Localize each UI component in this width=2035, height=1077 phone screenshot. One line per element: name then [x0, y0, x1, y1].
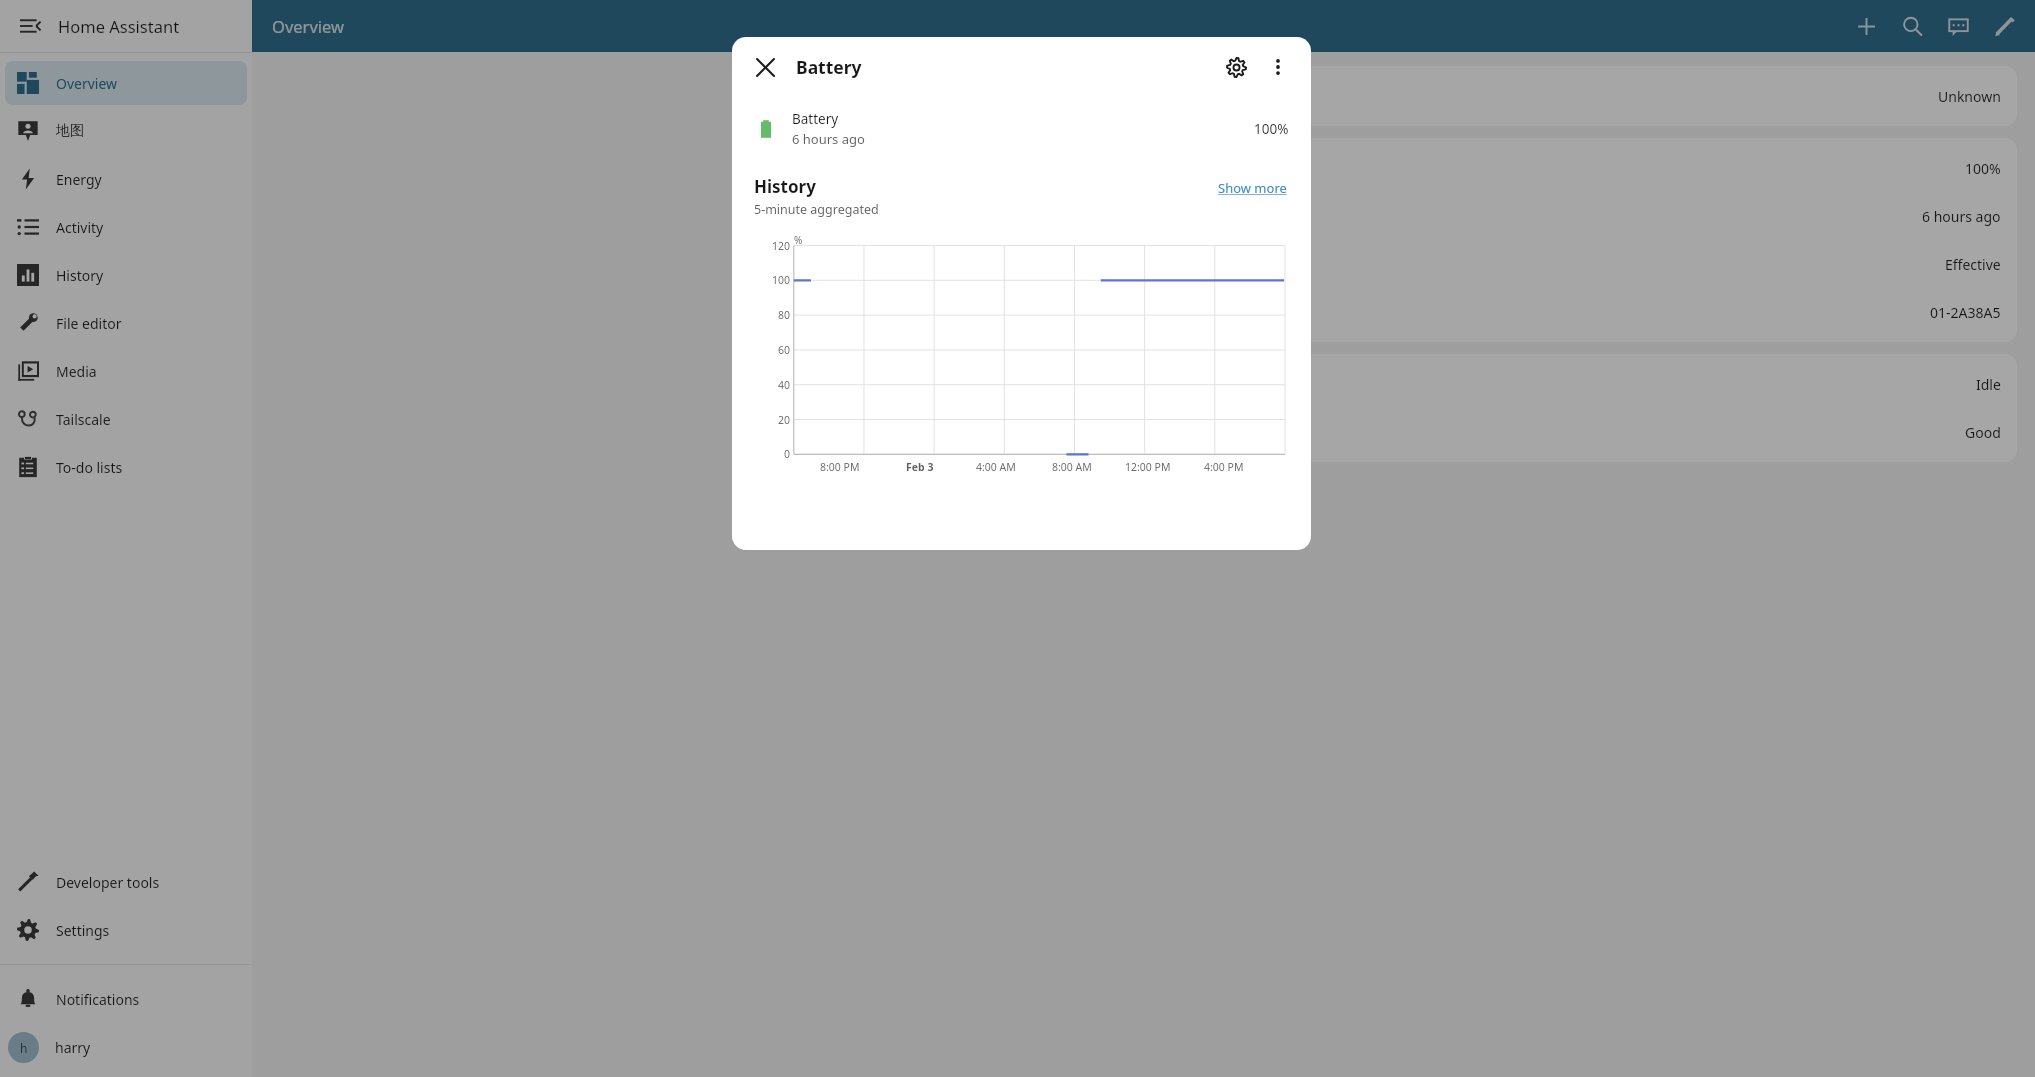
- staticText: Battery: [792, 110, 839, 128]
- staticText: 12:00 PM: [1125, 460, 1171, 474]
- staticText: 0: [783, 447, 790, 461]
- staticText: Overview: [56, 74, 118, 93]
- staticText: Tailscale: [56, 410, 111, 429]
- staticText: %: [794, 233, 803, 247]
- button[interactable]: Charging: [1158, 66, 2017, 126]
- button[interactable]: 地图: [5, 109, 247, 153]
- button[interactable]: Media: [5, 349, 247, 393]
- button[interactable]: Assist: [1935, 3, 1981, 49]
- staticText: harry: [55, 1038, 91, 1057]
- staticText: Status: [1174, 375, 1216, 394]
- button[interactable]: Overview: [5, 61, 247, 105]
- button[interactable]: Status: [1158, 354, 2017, 462]
- button[interactable]: Add: [1843, 3, 1889, 49]
- staticText: 60: [777, 343, 790, 357]
- button[interactable]: Battery level: [1158, 138, 2017, 342]
- staticText: 5-minute aggregated: [754, 201, 879, 218]
- staticText: 100%: [1965, 159, 2001, 178]
- staticText: 100%: [1254, 120, 1289, 138]
- button[interactable]: To-do lists: [5, 445, 247, 489]
- button[interactable]: Show more: [1216, 175, 1289, 201]
- button[interactable]: Close: [744, 46, 786, 88]
- staticText: Show more: [1218, 179, 1287, 197]
- staticText: 地图: [56, 122, 84, 140]
- staticText: File editor: [56, 314, 122, 333]
- staticText: Notifications: [56, 990, 140, 1009]
- staticText: 120: [771, 239, 790, 253]
- staticText: 20: [777, 413, 790, 427]
- staticText: 4:00 PM: [1204, 460, 1244, 474]
- staticText: Unknown: [1938, 87, 2001, 106]
- staticText: 01-2A38A5: [1930, 303, 2001, 322]
- button[interactable]: More options: [1257, 46, 1299, 88]
- staticText: 8:00 PM: [820, 460, 860, 474]
- staticText: History: [754, 175, 816, 198]
- button[interactable]: Settings: [5, 908, 247, 952]
- staticText: Battery: [796, 55, 862, 79]
- staticText: History: [56, 266, 104, 285]
- staticText: 100: [771, 273, 790, 287]
- button[interactable]: Activity: [5, 205, 247, 249]
- staticText: Media: [56, 362, 97, 381]
- button[interactable]: Edit dashboard: [1981, 3, 2027, 49]
- button[interactable]: Developer tools: [5, 860, 247, 904]
- staticText: Home Assistant: [58, 15, 180, 37]
- button[interactable]: Energy: [5, 157, 247, 201]
- button[interactable]: History: [5, 253, 247, 297]
- button[interactable]: Battery: [732, 97, 1311, 161]
- button[interactable]: Search: [1889, 3, 1935, 49]
- staticText: Feb 3: [906, 460, 934, 474]
- staticText: 8:00 AM: [1052, 460, 1092, 474]
- staticText: 4:00 AM: [976, 460, 1016, 474]
- staticText: Effective: [1945, 255, 2001, 274]
- staticText: Overview: [272, 15, 344, 37]
- staticText: To-do lists: [56, 458, 123, 477]
- staticText: 6 hours ago: [792, 130, 865, 148]
- button[interactable]: Settings: [1215, 46, 1257, 88]
- staticText: Good: [1965, 423, 2001, 442]
- staticText: Activity: [56, 218, 104, 237]
- staticText: Signal: [1174, 423, 1215, 442]
- staticText: Developer tools: [56, 873, 160, 892]
- staticText: 6 hours ago: [1922, 207, 2001, 226]
- staticText: Serial: [1174, 303, 1211, 322]
- button[interactable]: Notifications: [5, 977, 247, 1021]
- staticText: Idle: [1976, 375, 2001, 394]
- button[interactable]: Collapse sidebar: [10, 6, 50, 46]
- staticText: 40: [777, 378, 790, 392]
- button[interactable]: Tailscale: [5, 397, 247, 441]
- staticText: h: [20, 1040, 28, 1056]
- staticText: 80: [777, 308, 790, 322]
- staticText: Settings: [56, 921, 110, 940]
- button[interactable]: h: [0, 1023, 252, 1071]
- staticText: Energy: [56, 170, 102, 189]
- button[interactable]: File editor: [5, 301, 247, 345]
